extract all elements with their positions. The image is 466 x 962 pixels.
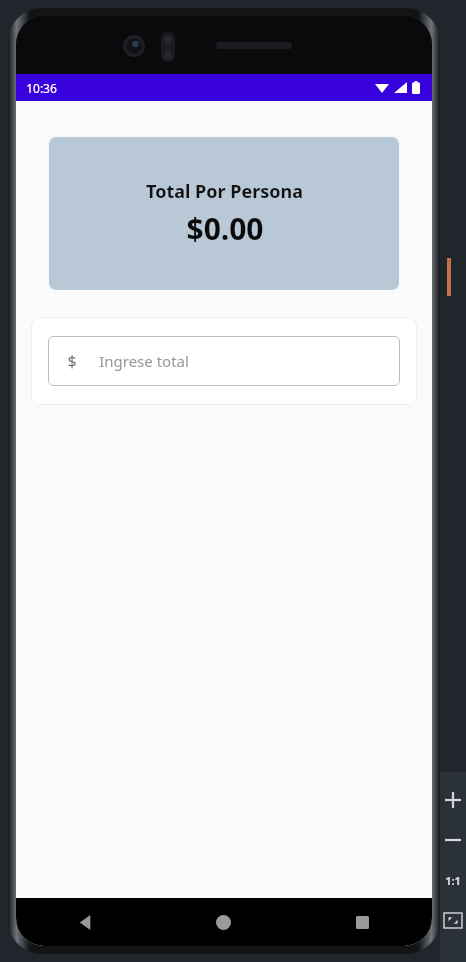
staticText: 1:1 — [445, 873, 461, 888]
button[interactable]: 1:1 — [440, 860, 466, 900]
button[interactable]: Recent apps — [293, 898, 432, 946]
staticText: Total Por Persona — [146, 179, 303, 204]
staticText: $ — [67, 350, 77, 372]
button[interactable]: Screenshot — [440, 900, 466, 940]
button[interactable]: Back — [16, 898, 154, 946]
staticText: 10:36 — [26, 80, 57, 96]
button[interactable]: Home — [154, 898, 293, 946]
button[interactable]: Zoom in — [440, 780, 466, 820]
button[interactable]: Zoom out — [440, 820, 466, 860]
button[interactable]: $ — [48, 336, 400, 386]
staticText: $0.00 — [186, 208, 264, 249]
button[interactable]: Total Por Persona — [49, 137, 399, 290]
staticText: Ingrese total — [99, 351, 189, 371]
